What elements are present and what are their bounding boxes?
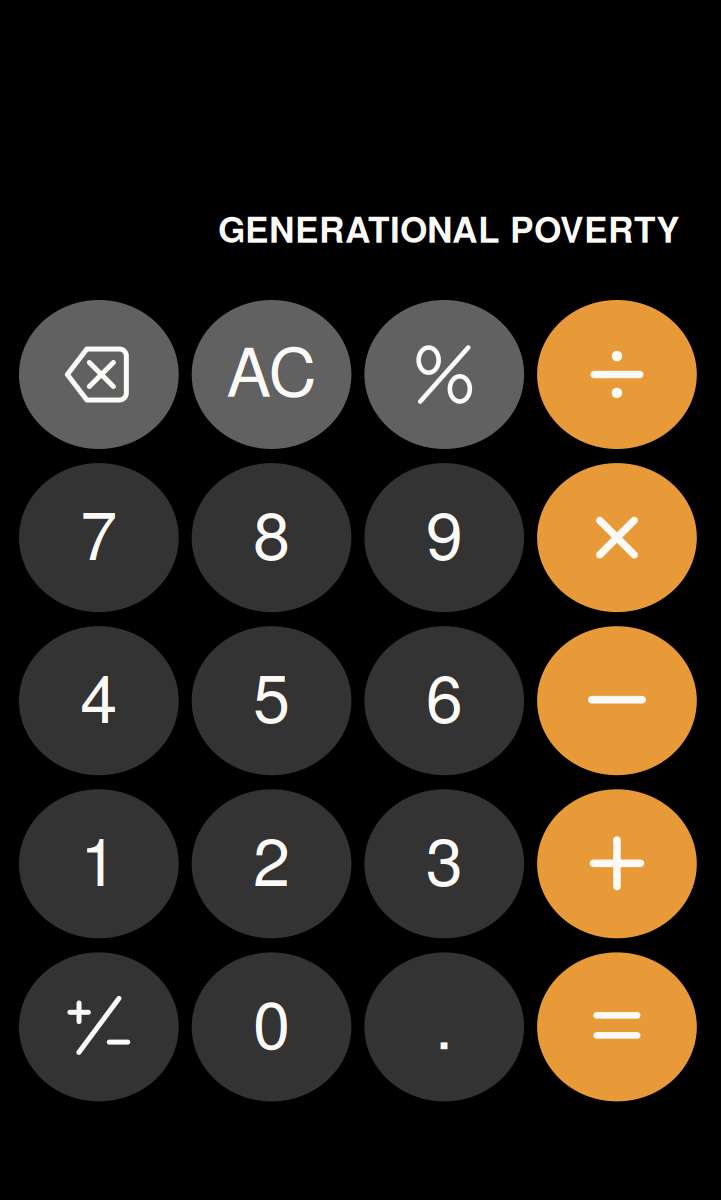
staticText: 1 bbox=[80, 810, 117, 905]
staticText: 0 bbox=[253, 973, 290, 1068]
button[interactable]: 4 bbox=[19, 626, 179, 775]
staticText: 9 bbox=[426, 483, 463, 579]
button[interactable]: 9 bbox=[364, 463, 524, 612]
button[interactable]: 5 bbox=[192, 626, 351, 775]
button[interactable]: 2 bbox=[192, 789, 351, 938]
button[interactable]: 1 bbox=[19, 789, 179, 938]
staticText: 8 bbox=[253, 483, 290, 579]
button[interactable]: . bbox=[364, 952, 524, 1101]
staticText: 7 bbox=[80, 483, 117, 579]
button[interactable]: Percent bbox=[364, 300, 524, 449]
button[interactable]: 7 bbox=[19, 463, 179, 612]
staticText: GENERATIONAL POVERTY bbox=[218, 203, 680, 254]
button[interactable]: Plus Minus bbox=[19, 952, 179, 1101]
staticText: 6 bbox=[426, 646, 463, 742]
button[interactable]: 8 bbox=[192, 463, 351, 612]
staticText: AC bbox=[226, 320, 316, 416]
staticText: 3 bbox=[426, 810, 463, 905]
button[interactable]: Divide bbox=[537, 300, 697, 449]
button[interactable]: Equals bbox=[537, 952, 697, 1101]
staticText: . bbox=[435, 973, 454, 1068]
staticText: 4 bbox=[80, 646, 117, 742]
staticText: 5 bbox=[253, 646, 290, 742]
button[interactable]: 3 bbox=[364, 789, 524, 938]
button[interactable]: 6 bbox=[364, 626, 524, 775]
staticText: 2 bbox=[253, 810, 290, 905]
button[interactable]: 0 bbox=[192, 952, 351, 1101]
button[interactable]: Add bbox=[537, 789, 697, 938]
button[interactable]: Multiply bbox=[537, 463, 697, 612]
button[interactable]: Subtract bbox=[537, 626, 697, 775]
button[interactable]: Delete bbox=[19, 300, 179, 449]
button[interactable]: AC bbox=[192, 300, 351, 449]
